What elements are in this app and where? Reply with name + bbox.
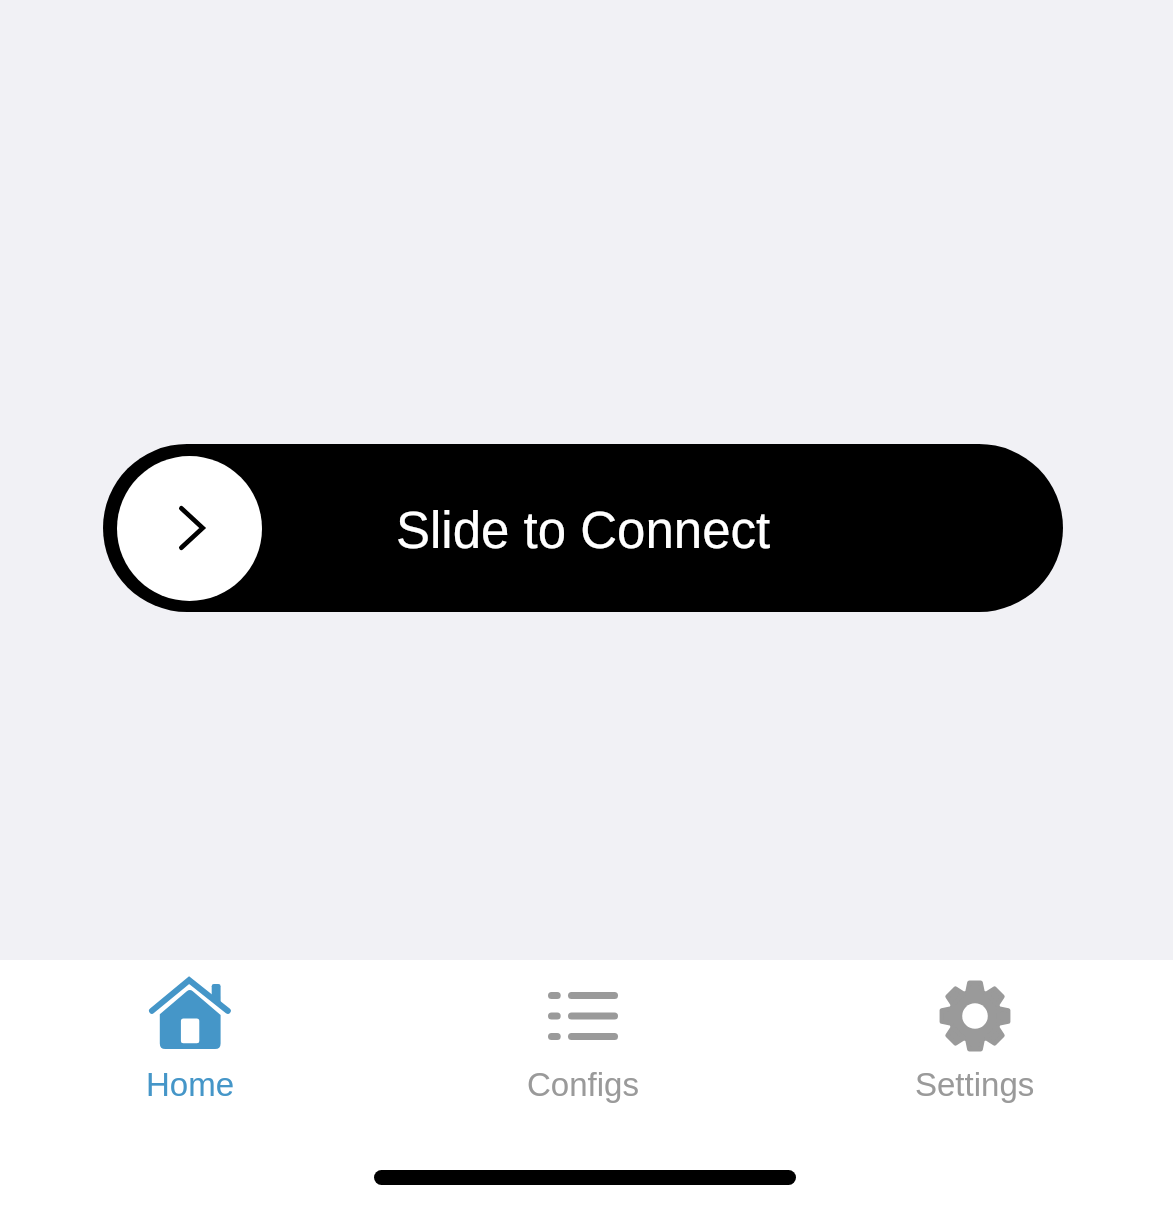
button[interactable]: Configs bbox=[483, 960, 683, 1100]
staticText: Configs bbox=[527, 1066, 639, 1103]
other: Slide to connect bbox=[117, 456, 262, 601]
staticText: Slide to Connect bbox=[396, 502, 771, 559]
button[interactable]: Home bbox=[90, 960, 290, 1100]
staticText: Home bbox=[146, 1066, 235, 1103]
button[interactable]: Settings bbox=[875, 960, 1075, 1100]
button[interactable]: Slide to Connect bbox=[103, 444, 1063, 612]
staticText: Settings bbox=[915, 1066, 1035, 1103]
